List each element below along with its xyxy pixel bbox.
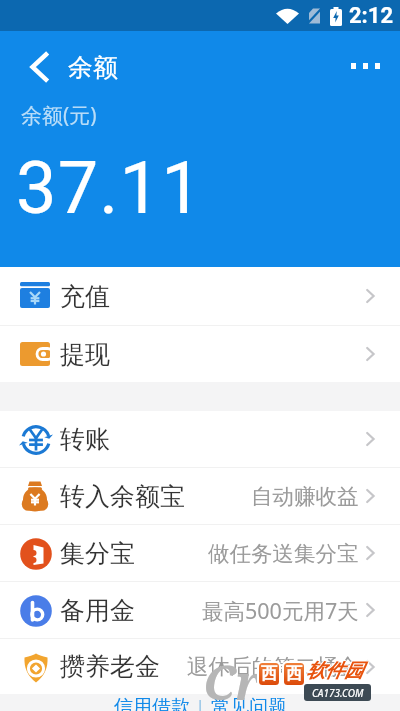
staticText: 备用金 bbox=[60, 595, 135, 626]
staticText: CA173.COM bbox=[312, 686, 364, 700]
staticText: 2:12 bbox=[349, 3, 394, 29]
button[interactable]: 信用借款 bbox=[114, 695, 190, 711]
staticText: 37.11 bbox=[16, 146, 203, 230]
staticText: 攒养老金 bbox=[60, 651, 160, 682]
button[interactable]: 集分宝 bbox=[0, 525, 400, 581]
button[interactable]: 常见问题 bbox=[211, 695, 287, 711]
staticText: 转账 bbox=[60, 424, 110, 455]
staticText: 做任务送集分宝 bbox=[208, 540, 359, 567]
staticText: | bbox=[190, 695, 211, 711]
button[interactable]: 攒养老金 bbox=[0, 639, 400, 694]
button[interactable]: 转账 bbox=[0, 411, 400, 467]
staticText: 转入余额宝 bbox=[60, 481, 185, 512]
button[interactable]: 充值 bbox=[0, 267, 400, 325]
staticText: 西 bbox=[261, 664, 277, 684]
staticText: 软件园 bbox=[306, 658, 363, 682]
staticText: 余额(元) bbox=[21, 101, 97, 130]
staticText: 退休后的第二桶金 bbox=[187, 653, 359, 680]
staticText: Cr bbox=[203, 649, 262, 701]
staticText: 最高500元用7天 bbox=[202, 596, 359, 625]
staticText: 西 bbox=[286, 664, 302, 684]
staticText: 充值 bbox=[60, 281, 110, 312]
button[interactable] bbox=[20, 45, 56, 89]
button[interactable]: 提现 bbox=[0, 326, 400, 382]
staticText: 软件园 bbox=[305, 659, 362, 683]
staticText: 自动赚收益 bbox=[251, 483, 359, 510]
staticText: 软件园 bbox=[306, 660, 363, 684]
staticText: 软件园 bbox=[306, 659, 363, 683]
staticText: 软件园 bbox=[307, 659, 364, 683]
button[interactable] bbox=[351, 63, 380, 69]
staticText: 余额 bbox=[68, 52, 118, 83]
button[interactable]: 转入余额宝 bbox=[0, 468, 400, 524]
staticText: 提现 bbox=[60, 339, 110, 370]
staticText: 集分宝 bbox=[60, 538, 135, 569]
button[interactable]: 备用金 bbox=[0, 582, 400, 638]
